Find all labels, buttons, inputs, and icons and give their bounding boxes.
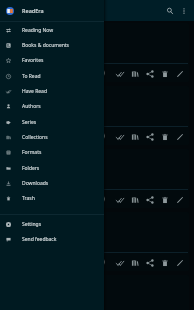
button[interactable]: Reading progress — [5, 23, 189, 82]
button[interactable]: More options — [177, 4, 190, 17]
staticText: Reading Now — [22, 27, 54, 34]
staticText: Books & documents — [22, 42, 70, 49]
button[interactable]: Reading progress — [94, 192, 108, 206]
staticText: Authors — [22, 103, 41, 110]
button[interactable]: Mark as read — [112, 255, 127, 270]
button[interactable]: Collections — [0, 130, 104, 145]
staticText: Formats — [22, 149, 42, 156]
button[interactable]: Formats — [0, 145, 104, 160]
staticText: Send feedback — [22, 236, 57, 243]
button[interactable]: Trash — [0, 191, 104, 206]
button[interactable]: Search — [162, 3, 177, 18]
button[interactable]: Reading progress — [94, 129, 108, 143]
button[interactable]: Share — [142, 66, 157, 81]
staticText: Favorites — [22, 57, 44, 64]
staticText: ReadEra — [22, 7, 44, 14]
button[interactable]: Edit — [172, 66, 187, 81]
button[interactable]: Open in library — [127, 66, 142, 81]
button[interactable]: Delete — [157, 129, 172, 144]
staticText: Have Read — [22, 88, 47, 95]
button[interactable]: Series — [0, 115, 104, 130]
button[interactable]: Open in library — [127, 192, 142, 207]
button[interactable]: Reading progress — [5, 212, 189, 271]
button[interactable]: To Read — [0, 69, 104, 84]
button[interactable]: Open in library — [127, 255, 142, 270]
button[interactable]: Folders — [0, 161, 104, 176]
button[interactable]: ReadEra — [0, 0, 104, 21]
button[interactable]: Open in library — [127, 129, 142, 144]
staticText: Series — [22, 119, 37, 126]
button[interactable]: Authors — [0, 99, 104, 114]
button[interactable]: Favorites — [0, 53, 104, 68]
button[interactable]: Share — [142, 192, 157, 207]
button[interactable]: Mark as read — [112, 129, 127, 144]
button[interactable]: Have Read — [0, 84, 104, 99]
button[interactable]: Delete — [157, 255, 172, 270]
button[interactable]: Reading progress — [94, 66, 108, 80]
button[interactable]: Share — [142, 129, 157, 144]
staticText: Folders — [22, 165, 40, 172]
staticText: Downloads — [22, 180, 49, 187]
button[interactable]: Edit — [172, 255, 187, 270]
button[interactable]: Reading progress — [94, 255, 108, 269]
staticText: Collections — [22, 134, 48, 141]
staticText: Trash — [22, 195, 35, 202]
staticText: Settings — [22, 221, 42, 228]
button[interactable]: Send feedback — [0, 232, 104, 247]
button[interactable]: Books & documents — [0, 38, 104, 53]
button[interactable]: Settings — [0, 217, 104, 232]
button[interactable]: Share — [142, 255, 157, 270]
button[interactable]: Delete — [157, 192, 172, 207]
staticText: To Read — [22, 73, 41, 80]
button[interactable]: Reading progress — [5, 275, 189, 310]
button[interactable]: Mark as read — [112, 66, 127, 81]
button[interactable]: Reading Now — [0, 23, 104, 38]
button[interactable]: Reading progress — [5, 149, 189, 208]
button[interactable]: Reading progress — [5, 86, 189, 145]
button[interactable]: Edit — [172, 192, 187, 207]
button[interactable]: Edit — [172, 129, 187, 144]
button[interactable]: Delete — [157, 66, 172, 81]
button[interactable]: Downloads — [0, 176, 104, 191]
button[interactable]: Mark as read — [112, 192, 127, 207]
